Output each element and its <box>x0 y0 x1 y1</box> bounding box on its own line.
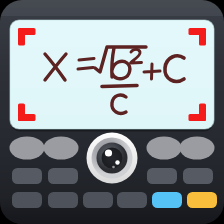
button[interactable]: Photo calculator <box>0 0 224 224</box>
